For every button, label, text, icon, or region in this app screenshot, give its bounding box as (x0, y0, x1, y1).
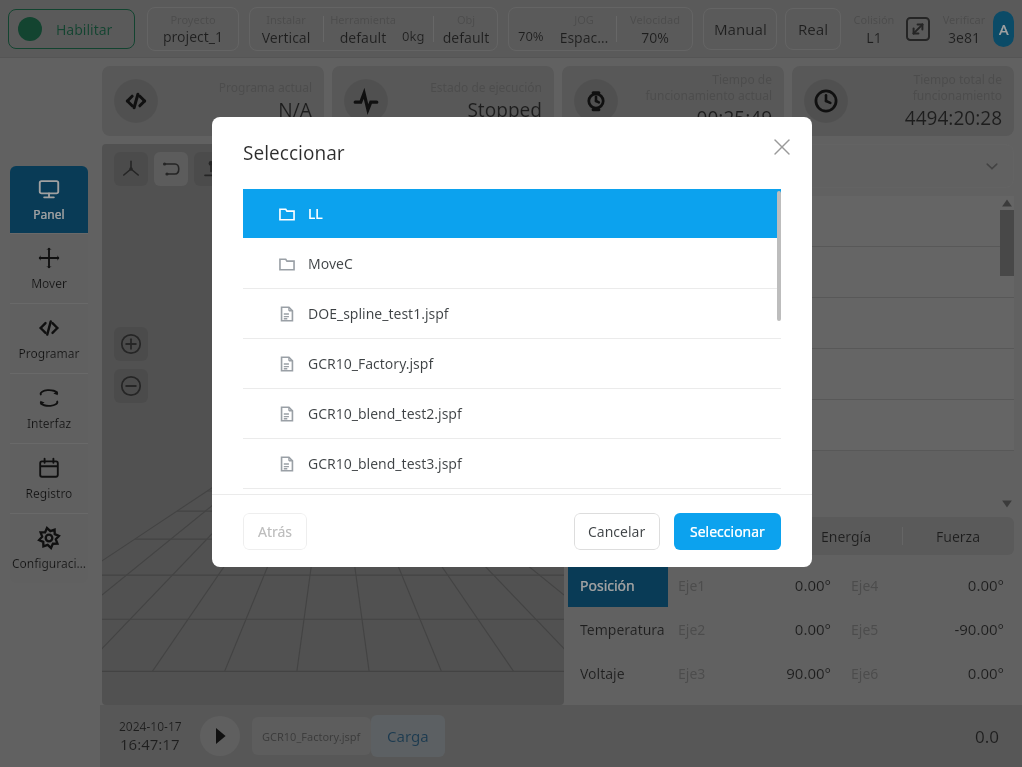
staticText: Instalar (249, 12, 323, 27)
button[interactable]: Herramienta 1 (114, 152, 148, 186)
staticText: Eje6 (851, 664, 879, 683)
staticText: Vertical (249, 28, 323, 47)
button[interactable]: Estado de ejecución (332, 66, 554, 136)
button[interactable]: 70% (508, 7, 693, 51)
staticText: Eje5 (851, 620, 879, 639)
staticText: Cartesiano (588, 527, 659, 546)
button[interactable]: Herramienta 3 (194, 152, 228, 186)
button[interactable]: Alejar (114, 369, 148, 403)
button[interactable]: Proyecto (147, 7, 239, 51)
button[interactable]: RobotEnableState:Disable (568, 400, 1014, 450)
button[interactable]: ControllerState:Run (568, 349, 1014, 399)
staticText: Manual (714, 19, 767, 39)
button[interactable]: Interfaz (10, 374, 88, 443)
button[interactable]: Cancelar (574, 513, 660, 550)
staticText: 2024-10-17 (119, 718, 182, 734)
button[interactable]: Manual (703, 8, 777, 50)
button[interactable]: Atrás (243, 513, 307, 550)
staticText: GCR10_Factory.jspf (308, 354, 434, 373)
staticText: Posición (580, 576, 635, 595)
staticText: 70% (617, 28, 693, 47)
button[interactable]: Instalar (249, 7, 498, 51)
button[interactable]: Energía (791, 517, 902, 555)
staticText: Herramienta (324, 12, 402, 27)
button[interactable]: MoveC (243, 239, 781, 288)
button[interactable]: Cartesiano (568, 517, 678, 555)
button[interactable]: Cerrar (766, 131, 798, 163)
button[interactable]: Todos los módulos (568, 144, 1014, 188)
button[interactable]: Configuración (10, 514, 88, 583)
staticText: Registro (10, 485, 88, 501)
staticText: -90.00° (879, 619, 1004, 639)
staticText: Voltaje (580, 664, 625, 683)
staticText: A (999, 19, 1009, 39)
button[interactable]: ProgramState Changed:Stopped (568, 196, 1014, 246)
staticText: Temperatura (580, 620, 665, 639)
staticText: 4494:20:28 (856, 105, 1002, 131)
staticText: Cancelar (588, 522, 646, 541)
staticText: Energía (821, 527, 872, 546)
staticText: 3e81 (937, 28, 991, 47)
button[interactable]: Acercar (114, 327, 148, 361)
button[interactable]: Tiempo de funcionamiento actual (562, 66, 784, 136)
button[interactable]: Fuerza (903, 517, 1014, 555)
button[interactable]: Carga (371, 715, 445, 757)
button[interactable]: GCR10_blend_test3.jspf (243, 439, 781, 488)
button[interactable]: Expandir (903, 14, 933, 44)
staticText: Programar (10, 345, 88, 361)
staticText: ProgramState Changed:Stopped (582, 212, 795, 231)
staticText: Velocidad (617, 12, 693, 27)
staticText: Eje4 (851, 576, 879, 595)
staticText: Estado de ejecución (396, 79, 542, 95)
staticText: 0.0 (975, 725, 1000, 748)
button[interactable]: Panel (10, 166, 88, 233)
button[interactable]: Posición (568, 563, 668, 607)
staticText: 90.00° (706, 663, 831, 683)
staticText: Carga (387, 726, 429, 746)
button[interactable]: GCR10_Factory.jspf (252, 717, 371, 755)
staticText: default (434, 28, 498, 47)
staticText: Habilitar (56, 20, 113, 39)
staticText: Mover (10, 275, 88, 291)
staticText: GCR10_blend_test3.jspf (308, 454, 462, 473)
staticText: Todos los módulos (582, 157, 984, 176)
button[interactable]: GCR10_blend_test2.jspf (243, 389, 781, 438)
staticText: 0.00° (706, 575, 831, 595)
staticText: Stopped (396, 97, 542, 123)
staticText: 0.00° (706, 619, 831, 639)
staticText: Espac… (552, 28, 616, 47)
button[interactable]: DOE_spline_test1.jspf (243, 289, 781, 338)
staticText: DOE_spline_test1.jspf (308, 304, 449, 323)
button[interactable]: TaskState Changed:TaskRunning (568, 247, 1014, 297)
button[interactable]: Voltaje (568, 651, 668, 695)
button[interactable]: Registro (10, 444, 88, 513)
staticText: Eje2 (678, 620, 706, 639)
button[interactable]: Seleccionar (674, 513, 781, 550)
button[interactable]: LL (243, 189, 781, 238)
staticText: project_1 (147, 27, 239, 46)
button[interactable]: Herramienta 2 (154, 152, 188, 186)
button[interactable]: RobotEnableState:Enable (568, 298, 1014, 348)
button[interactable]: Tiempo total de funcionamiento (792, 66, 1014, 136)
button[interactable]: Articulación (679, 517, 790, 555)
staticText: Colisión (849, 12, 899, 27)
button[interactable]: Mover (10, 234, 88, 303)
button[interactable]: Real (785, 8, 841, 50)
button[interactable]: Reproducir (200, 716, 240, 756)
button[interactable]: Programa actual (102, 66, 324, 136)
button[interactable]: Habilitar (8, 9, 135, 49)
button[interactable]: A (993, 11, 1014, 47)
button[interactable]: GCR10_Factory.jspf (243, 339, 781, 388)
button[interactable]: Temperatura (568, 607, 668, 651)
staticText: Eje1 (678, 576, 706, 595)
button[interactable]: Programar (10, 304, 88, 373)
staticText: LL (308, 204, 323, 223)
staticText: Seleccionar (243, 140, 345, 166)
staticText: Configuración (10, 555, 88, 571)
staticText: Tiempo total de funcionamiento (856, 71, 1002, 103)
staticText: 0.00° (879, 575, 1004, 595)
